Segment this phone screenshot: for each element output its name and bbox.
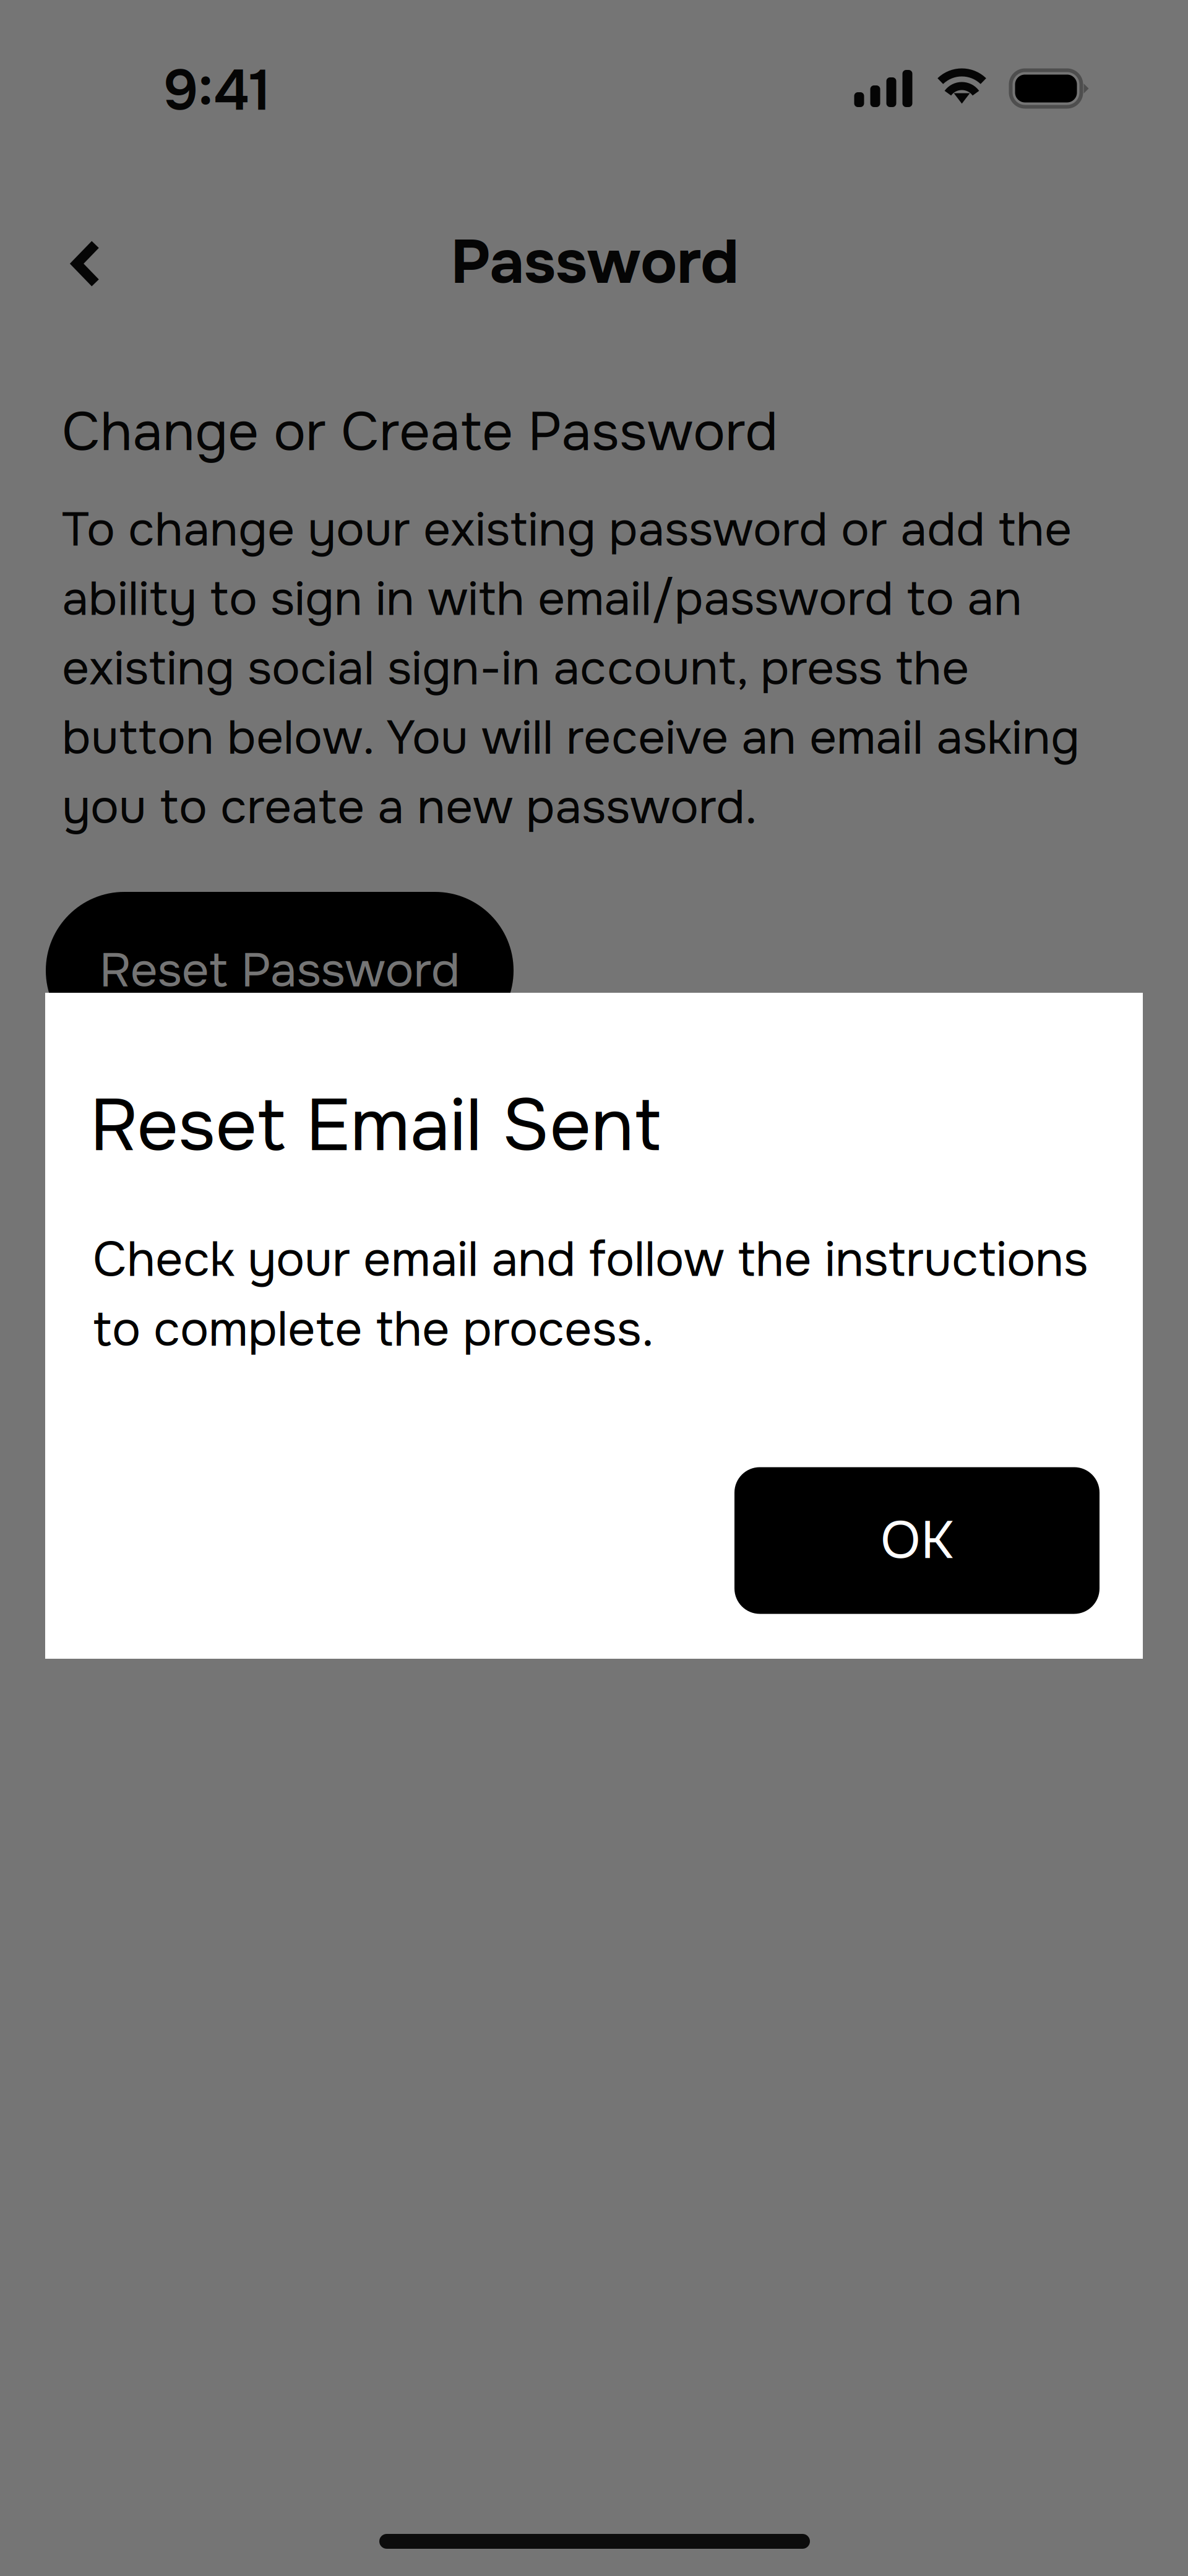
staticText: 9:41 [163, 55, 271, 127]
staticText: To change your existing password or add … [62, 499, 1080, 838]
staticText: Reset Email Sent [90, 1079, 661, 1172]
staticText: Password [450, 223, 739, 302]
button[interactable]: OK [734, 1467, 1100, 1614]
staticText: OK [880, 1507, 953, 1574]
staticText: Check your email and follow the instruct… [93, 1229, 1088, 1360]
button[interactable]: Back [31, 210, 141, 318]
button[interactable]: Reset Password [46, 892, 514, 1049]
staticText: Reset Password [99, 940, 460, 1001]
staticText: Change or Create Password [62, 397, 778, 467]
